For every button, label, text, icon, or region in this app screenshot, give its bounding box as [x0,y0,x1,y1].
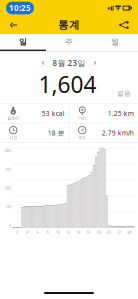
button[interactable]: Previous day [38,58,47,67]
staticText: 1,604 [38,69,96,99]
staticText: 53 kcal [42,109,65,118]
staticText: 2 [16,229,18,235]
staticText: 16 [86,229,90,235]
button[interactable]: Back [4,16,24,34]
staticText: 18 분 [48,128,65,137]
staticText: 300 [5,166,11,172]
staticText: 400 [5,148,11,153]
staticText: 20 [107,229,111,235]
staticText: 주 [65,37,73,47]
staticText: 22 [117,229,121,235]
staticText: 100 [5,204,11,209]
staticText: 6 [36,229,38,235]
staticText: 칼로리 [7,116,19,120]
button[interactable]: Next day [90,58,99,67]
staticText: 거리 [78,116,86,120]
staticText: 시간 [9,135,17,140]
staticText: 8 [47,229,49,235]
staticText: 4 [26,229,28,235]
button[interactable]: 월 [92,34,138,51]
staticText: 2.79 km/h [102,128,134,137]
staticText: 월 [111,37,119,47]
staticText: 일 [19,37,27,47]
staticText: 10:25 [9,3,31,13]
staticText: 10 [56,229,60,235]
staticText: 속도 [78,135,86,140]
staticText: 걸음 [117,89,131,97]
staticText: 18 [96,229,100,235]
staticText: 0 [9,222,11,228]
button[interactable]: 주 [46,34,92,51]
staticText: 12 [66,229,70,235]
staticText: 200 [5,185,11,190]
button[interactable]: Share [114,16,134,34]
button[interactable]: 일 [0,34,46,51]
staticText: 8월 23일 [52,58,85,68]
staticText: 24 [127,229,131,235]
staticText: 통계 [58,18,80,31]
staticText: 14 [76,229,80,235]
staticText: 1.25 km [108,109,134,118]
